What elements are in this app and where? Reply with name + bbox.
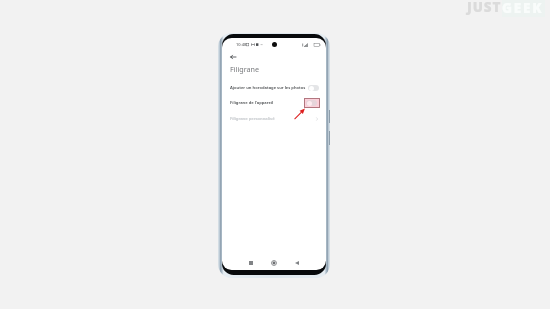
button[interactable]: Ajouter un horodatage sur les photos xyxy=(222,80,326,95)
button[interactable]: Back xyxy=(227,51,238,62)
staticText: JUST xyxy=(467,0,502,16)
button[interactable]: Home xyxy=(269,258,279,268)
staticText: Ajouter un horodatage sur les photos xyxy=(230,85,308,91)
button[interactable]: Recents xyxy=(246,258,256,268)
staticText: Filigrane xyxy=(230,64,260,74)
staticText: GEEK xyxy=(502,0,544,17)
staticText: Filigrane de l'appareil xyxy=(230,100,303,106)
button[interactable]: Filigrane de l'appareil xyxy=(222,95,326,110)
button[interactable]: Toggle xyxy=(306,100,317,106)
button[interactable]: Filigrane personnalisé xyxy=(222,111,326,126)
staticText: Filigrane personnalisé xyxy=(230,116,316,122)
button[interactable]: Back xyxy=(292,258,302,268)
button[interactable]: Toggle xyxy=(308,85,319,91)
staticText: 10:48 xyxy=(236,42,247,47)
